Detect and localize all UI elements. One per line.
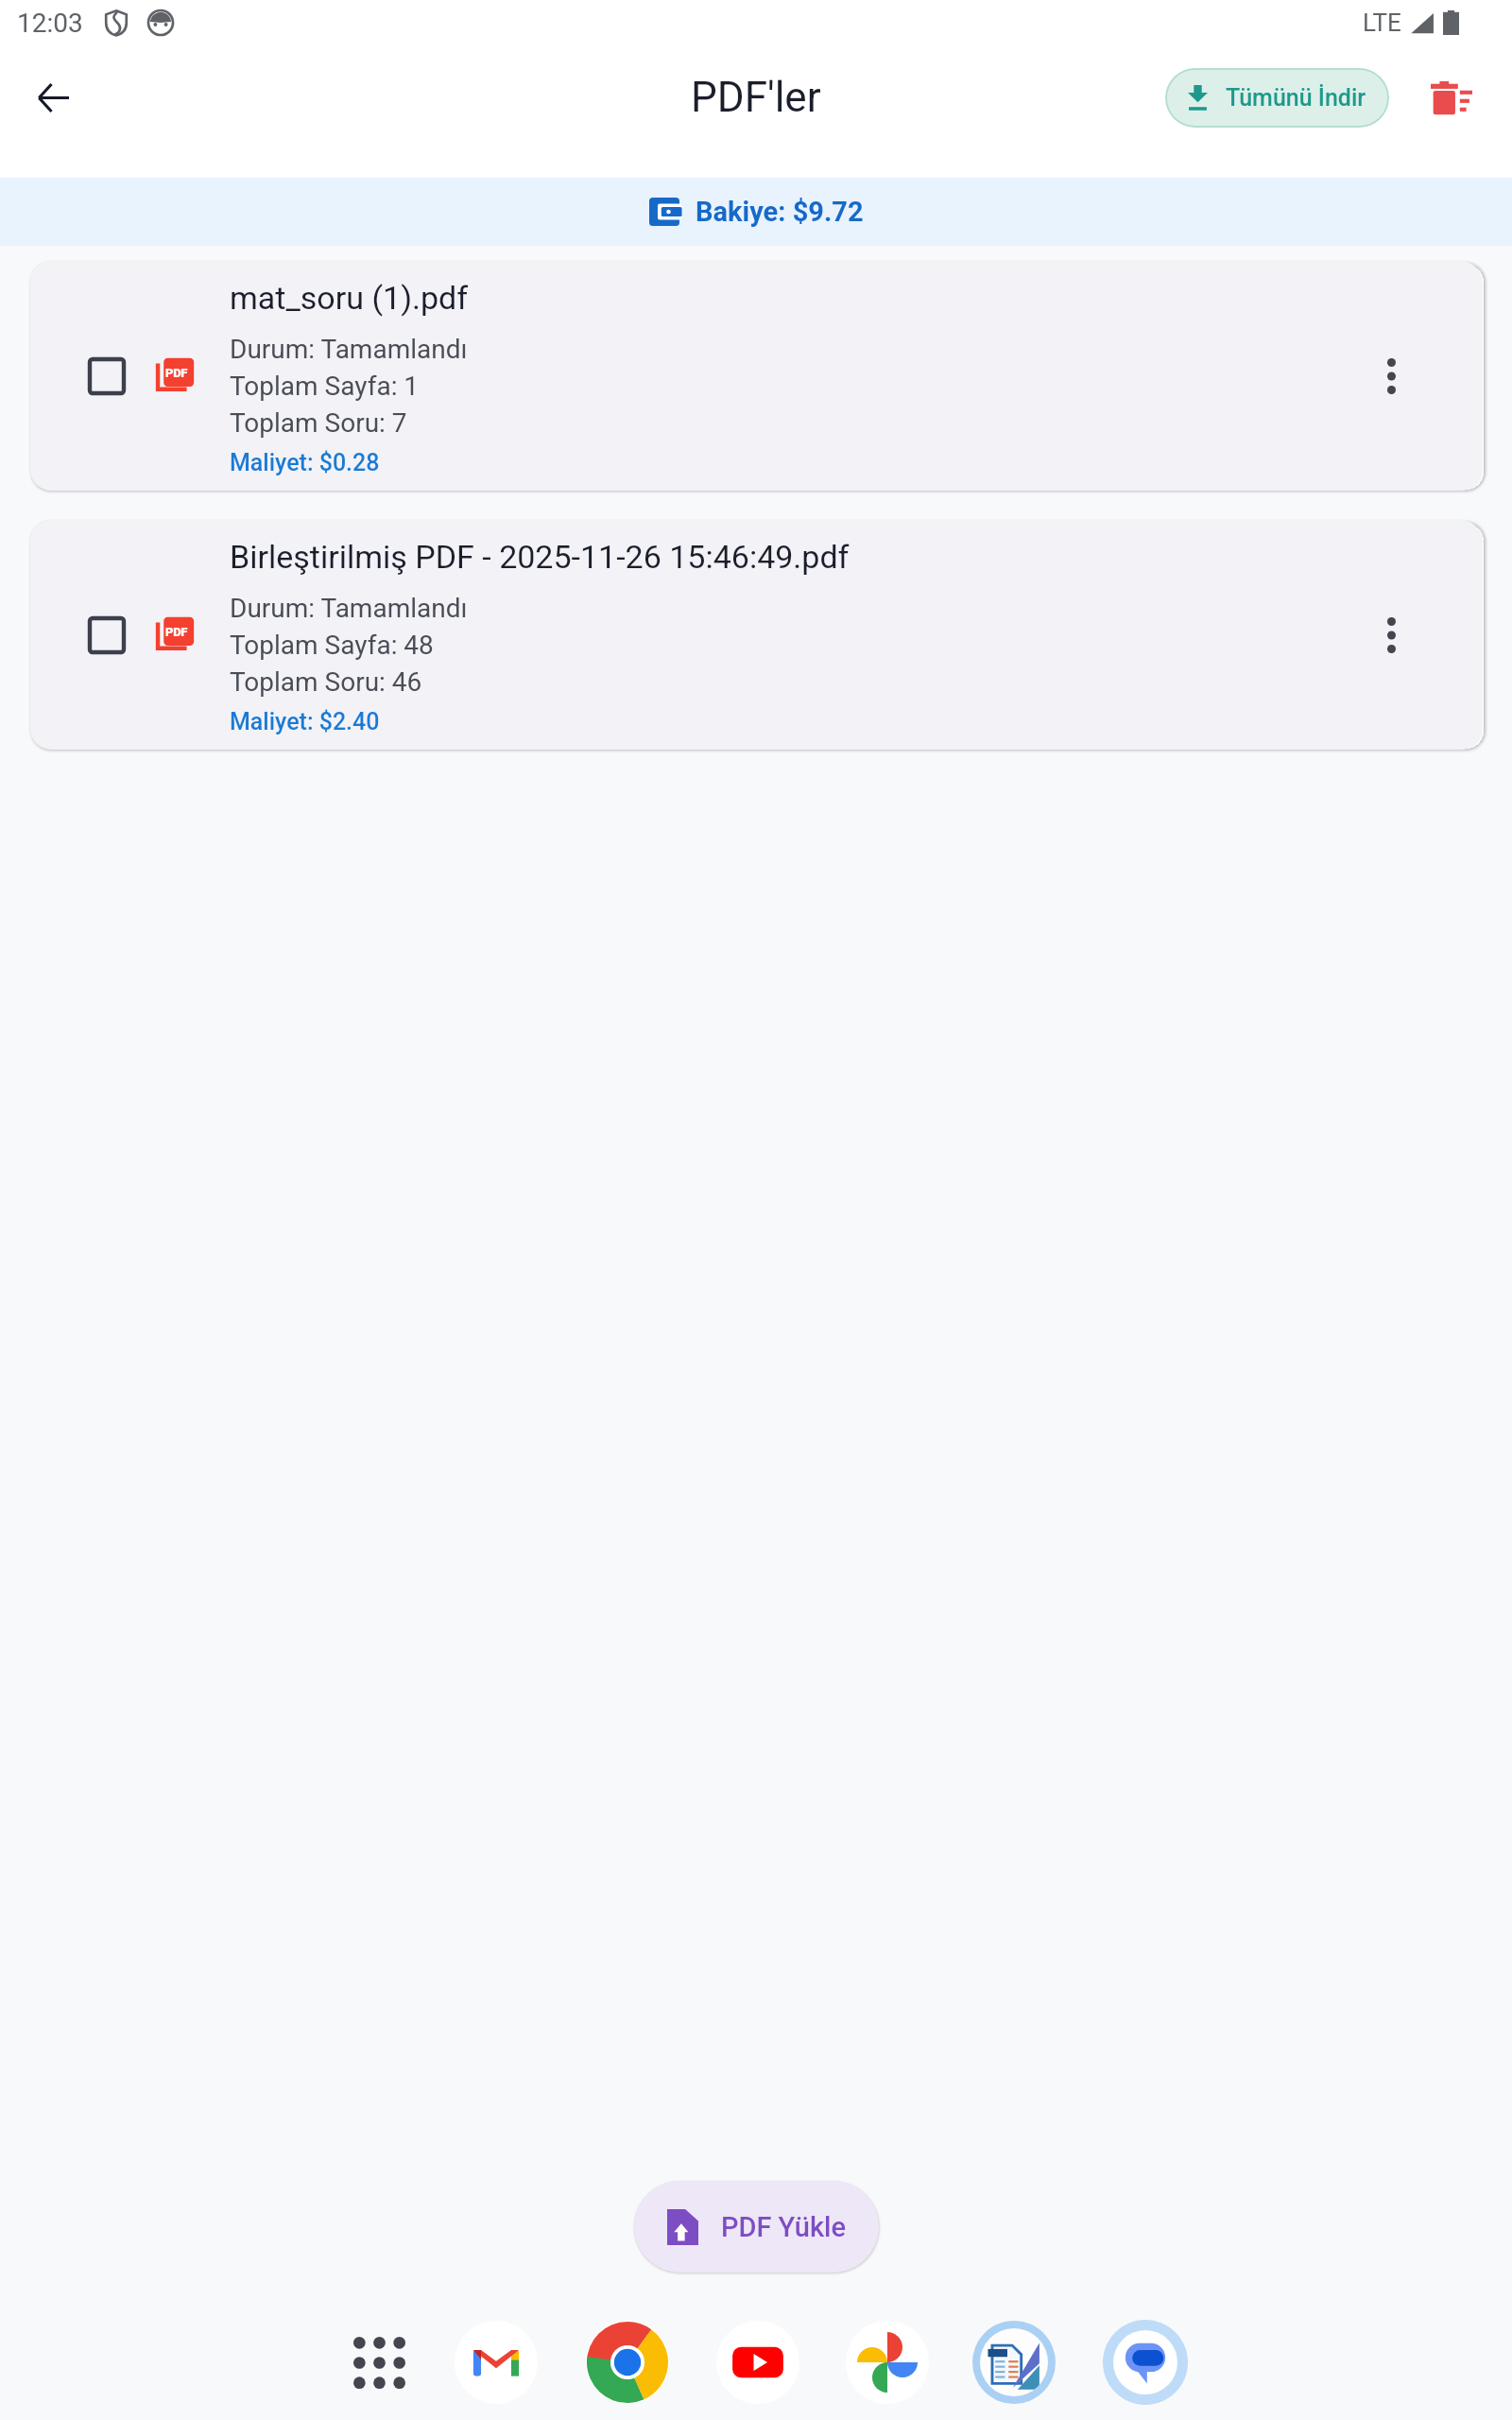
button[interactable]: YouTube: [716, 2321, 799, 2404]
button[interactable]: Google Fotoğraflar: [846, 2321, 929, 2404]
staticText: PDF Yükle: [721, 2211, 846, 2243]
button[interactable]: Tüm uygulamalar: [338, 2322, 421, 2404]
staticText: PDF'ler: [691, 73, 821, 122]
staticText: LTE: [1363, 9, 1401, 37]
staticText: Durum: Tamamlandı: [230, 593, 468, 624]
staticText: Toplam Soru: 46: [230, 666, 422, 698]
button[interactable]: Daha fazla: [1354, 598, 1428, 672]
button[interactable]: Tümünü sil: [1426, 73, 1477, 124]
button[interactable]: Gmail: [455, 2321, 538, 2404]
staticText: PDF: [165, 625, 188, 639]
staticText: Bakiye: $9.72: [696, 196, 864, 228]
button[interactable]: Tümünü İndir: [1165, 68, 1389, 128]
button[interactable]: PDF Soru: [972, 2321, 1056, 2404]
button[interactable]: Daha fazla: [1354, 339, 1428, 413]
staticText: 12:03: [17, 8, 83, 39]
staticText: mat_soru (1).pdf: [230, 279, 469, 317]
button[interactable]: Mesajlar: [1103, 2320, 1188, 2405]
staticText: PDF: [165, 366, 188, 380]
button[interactable]: Seç: [30, 261, 1482, 491]
button[interactable]: PDF Yükle: [634, 2181, 879, 2273]
staticText: Maliyet: $0.28: [230, 449, 380, 476]
button[interactable]: Seç: [79, 608, 134, 663]
staticText: Tümünü İndir: [1226, 84, 1366, 112]
staticText: Toplam Sayfa: 48: [230, 630, 434, 661]
staticText: Toplam Soru: 7: [230, 407, 407, 439]
staticText: Maliyet: $2.40: [230, 708, 380, 735]
staticText: Toplam Sayfa: 1: [230, 371, 420, 402]
staticText: Birleştirilmiş PDF - 2025-11-26 15:46:49…: [230, 538, 850, 576]
button[interactable]: Seç: [30, 520, 1482, 750]
staticText: Durum: Tamamlandı: [230, 334, 468, 365]
button[interactable]: Seç: [79, 349, 134, 404]
button[interactable]: Geri: [15, 60, 91, 135]
button[interactable]: Chrome: [586, 2321, 669, 2404]
